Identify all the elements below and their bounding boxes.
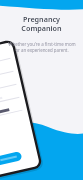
staticText: Pregnancy Companion	[5, 14, 78, 33]
staticText: Whether you're a first-time mom or an ex…	[8, 41, 76, 53]
button[interactable]: Pregnancy Companion intro illustration	[0, 0, 83, 180]
